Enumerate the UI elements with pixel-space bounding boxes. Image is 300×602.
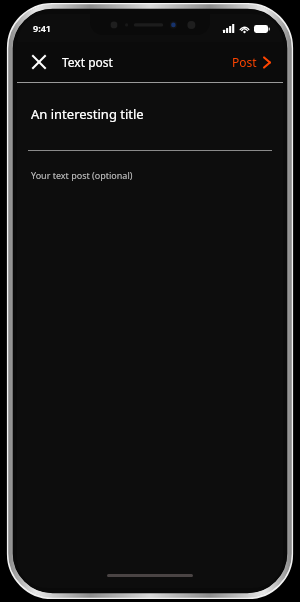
staticText: Your text post (optional): [31, 169, 133, 181]
staticText: Post: [232, 54, 257, 70]
button[interactable]: Post: [228, 49, 275, 75]
staticText: Text post: [62, 54, 113, 70]
staticText: An interesting title: [31, 105, 144, 123]
button[interactable]: Your text post (optional): [17, 151, 283, 199]
staticText: 9:41: [33, 22, 51, 34]
button[interactable]: Close: [22, 45, 56, 79]
button[interactable]: An interesting title: [17, 83, 283, 150]
